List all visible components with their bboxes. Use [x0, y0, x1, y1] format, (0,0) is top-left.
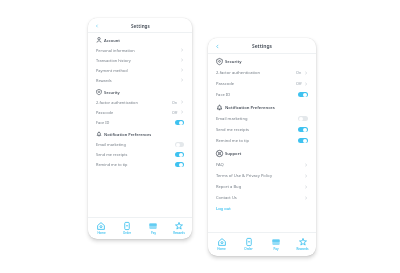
button[interactable]: Rewards	[289, 233, 316, 256]
staticText: Security	[225, 59, 242, 65]
staticText: Home	[97, 231, 106, 235]
staticText: Email marketing	[216, 116, 248, 122]
staticText: Send me receipts	[216, 127, 250, 133]
staticText: Rewards	[296, 247, 309, 251]
staticText: Transaction history	[96, 58, 131, 63]
button[interactable]: Back	[93, 22, 101, 30]
button[interactable]: Remind me to tip	[208, 135, 316, 146]
button[interactable]: On	[175, 152, 184, 157]
button[interactable]: Report a Bug	[208, 181, 316, 192]
button[interactable]: Face ID	[208, 89, 316, 100]
staticText: Passcode	[96, 110, 114, 115]
button[interactable]: Home	[88, 218, 114, 239]
button[interactable]: Email marketing	[208, 113, 316, 124]
staticText: 2-factor authentication	[216, 70, 261, 76]
staticText: Home	[217, 247, 226, 251]
button[interactable]: Passcode	[88, 107, 192, 117]
button[interactable]: On	[298, 127, 308, 132]
staticText: Terms of Use & Privacy Policy	[216, 173, 273, 179]
staticText: Notification Preferences	[225, 105, 275, 111]
button[interactable]: Contact Us	[208, 192, 316, 203]
staticText: On	[296, 70, 302, 75]
button[interactable]: Transaction history	[88, 55, 192, 65]
staticText: Order	[244, 247, 253, 251]
staticText: On	[172, 100, 178, 105]
staticText: Log out	[216, 206, 231, 212]
staticText: Pay	[273, 247, 279, 251]
button[interactable]: 2-factor authentication	[88, 97, 192, 107]
button[interactable]: 2-factor authentication	[208, 67, 316, 78]
button[interactable]: Home	[208, 233, 235, 256]
staticText: Remind me to tip	[216, 138, 250, 144]
staticText: Personal information	[96, 48, 135, 53]
staticText: Report a Bug	[216, 184, 242, 190]
staticText: Account	[104, 38, 120, 43]
staticText: Rewards	[173, 231, 185, 235]
button[interactable]: Pay	[262, 233, 289, 256]
staticText: Contact Us	[216, 195, 237, 201]
staticText: Face ID	[96, 120, 110, 125]
button[interactable]: Terms of Use & Privacy Policy	[208, 170, 316, 181]
button[interactable]: Passcode	[208, 78, 316, 89]
button[interactable]: Log out	[208, 203, 316, 214]
staticText: Face ID	[216, 92, 231, 98]
staticText: Settings	[131, 23, 150, 29]
staticText: Notification Preferences	[104, 132, 152, 137]
button[interactable]: Off	[175, 142, 184, 147]
staticText: Settings	[252, 43, 273, 50]
button[interactable]: Face ID	[88, 117, 192, 127]
button[interactable]: Personal information	[88, 45, 192, 55]
staticText: Passcode	[216, 81, 234, 87]
button[interactable]: Back	[213, 42, 221, 50]
button[interactable]: Order	[235, 233, 262, 256]
button[interactable]: Order	[114, 218, 140, 239]
button[interactable]: Send me receipts	[88, 149, 192, 159]
button[interactable]: FAQ	[208, 159, 316, 170]
button[interactable]: Remind me to tip	[88, 159, 192, 169]
button[interactable]: Email marketing	[88, 139, 192, 149]
button[interactable]: Payment method	[88, 65, 192, 75]
button[interactable]: Off	[298, 116, 308, 121]
staticText: Rewards	[96, 78, 112, 83]
staticText: Send me receipts	[96, 152, 128, 157]
button[interactable]: On	[175, 120, 184, 125]
button[interactable]: On	[298, 92, 308, 97]
button[interactable]: On	[175, 162, 184, 167]
staticText: Order	[123, 231, 131, 235]
staticText: Off	[296, 81, 302, 86]
button[interactable]: Send me receipts	[208, 124, 316, 135]
staticText: Email marketing	[96, 142, 126, 147]
staticText: FAQ	[216, 162, 224, 168]
button[interactable]: Rewards	[166, 218, 192, 239]
staticText: Support	[225, 151, 242, 157]
staticText: Remind me to tip	[96, 162, 128, 167]
staticText: Pay	[151, 231, 156, 235]
button[interactable]: Pay	[140, 218, 166, 239]
staticText: 2-factor authentication	[96, 100, 138, 105]
staticText: Payment method	[96, 68, 128, 73]
button[interactable]: On	[298, 138, 308, 143]
staticText: Off	[172, 110, 178, 115]
button[interactable]: Rewards	[88, 75, 192, 85]
staticText: Security	[104, 90, 120, 95]
